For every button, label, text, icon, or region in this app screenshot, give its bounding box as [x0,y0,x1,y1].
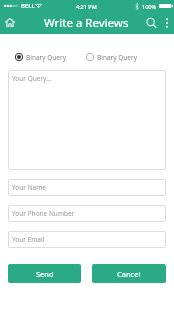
staticText: Binary Query [26,53,67,62]
button[interactable]: Your Phone Number [8,205,166,222]
staticText: 100% [142,3,157,10]
button[interactable]: Binary Query [85,52,138,62]
staticText: Your Phone Number [12,209,75,218]
staticText: Your Email [12,235,45,244]
button[interactable]: More options [160,12,174,34]
button[interactable]: Search [141,12,161,34]
staticText: Send [36,269,54,279]
button[interactable]: Binary Query [14,52,67,62]
staticText: Your Query... [12,74,52,83]
staticText: Your Name [12,183,47,192]
button[interactable]: Cancel [92,264,166,283]
button[interactable]: Your Email [8,231,166,248]
button[interactable]: Home [0,12,19,34]
button[interactable]: Your Name [8,179,166,196]
staticText: Binary Query [97,53,138,62]
button[interactable]: Send [8,264,81,283]
staticText: BELL [21,2,35,10]
staticText: Cancel [117,269,141,279]
staticText: Write a Reviews [44,15,129,31]
staticText: 4:21 PM [76,3,97,10]
button[interactable]: Your Query... [8,70,166,170]
